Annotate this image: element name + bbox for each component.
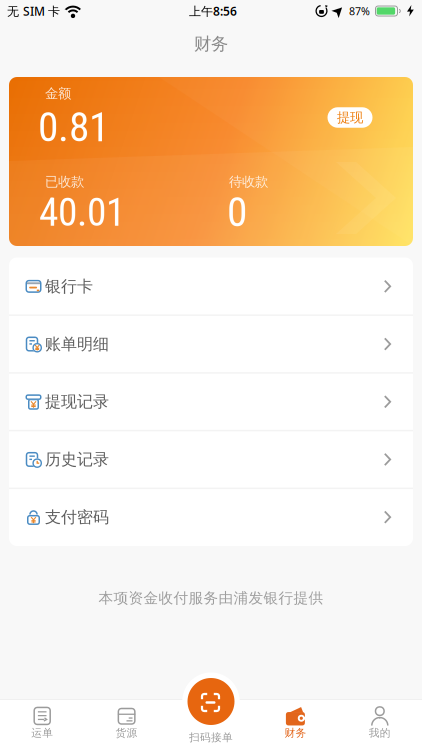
staticText: 金额: [45, 85, 71, 102]
button[interactable]: 提现: [327, 107, 372, 128]
staticText: 提现记录: [45, 392, 109, 412]
staticText: 账单明细: [45, 334, 109, 354]
staticText: 历史记录: [45, 450, 109, 469]
staticText: 货源: [116, 726, 138, 739]
staticText: 0.81: [38, 103, 109, 151]
button[interactable]: 我的: [338, 700, 422, 746]
staticText: 上午8:56: [189, 3, 237, 19]
staticText: 财务: [284, 726, 306, 739]
staticText: 已收款: [45, 173, 84, 190]
staticText: 待收款: [229, 173, 268, 190]
staticText: 我的: [369, 726, 391, 739]
button[interactable]: 运单: [0, 700, 84, 746]
button[interactable]: 银行卡: [9, 257, 413, 315]
staticText: 40.01: [39, 189, 125, 235]
staticText: 87%: [349, 4, 370, 18]
button[interactable]: 历史记录: [9, 431, 413, 488]
staticText: 银行卡: [45, 276, 93, 296]
staticText: 0: [227, 188, 247, 236]
button[interactable]: 账单明细: [9, 315, 413, 373]
button[interactable]: 货源: [85, 700, 169, 746]
staticText: 无 SIM 卡: [7, 3, 60, 19]
staticText: 提现: [337, 109, 363, 126]
button[interactable]: 扫码接单: [182, 673, 239, 746]
button[interactable]: 支付密码: [9, 488, 413, 546]
staticText: 运单: [31, 726, 53, 739]
button[interactable]: 财务: [253, 700, 337, 746]
button[interactable]: 提现记录: [9, 373, 413, 431]
staticText: 本项资金收付服务由浦发银行提供: [98, 589, 323, 607]
staticText: 支付密码: [45, 507, 109, 527]
staticText: 财务: [194, 33, 228, 55]
staticText: 扫码接单: [189, 731, 233, 744]
